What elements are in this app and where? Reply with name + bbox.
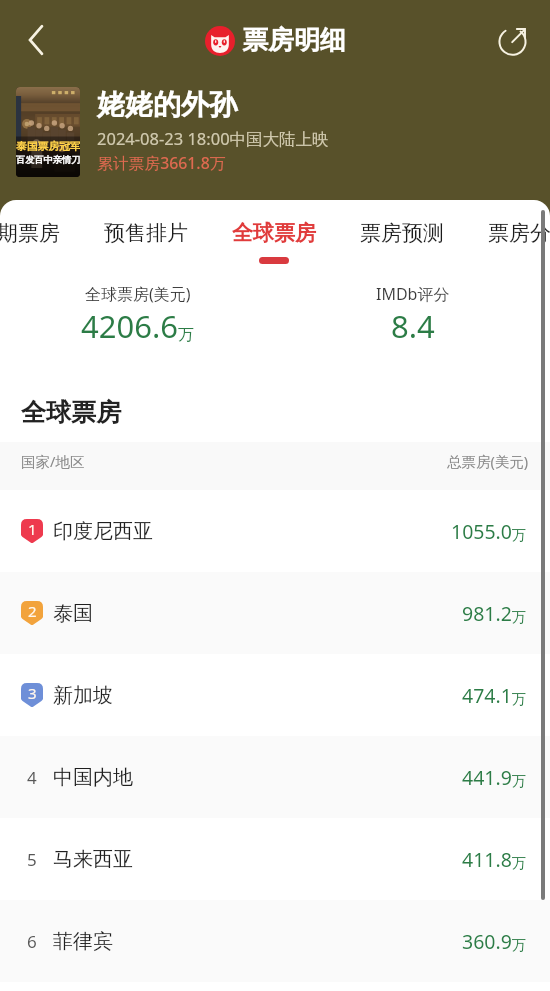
staticText: 1055.0 bbox=[451, 518, 512, 545]
staticText: 474.1 bbox=[462, 682, 512, 709]
staticText: IMDb评分 bbox=[376, 283, 450, 305]
staticText: 万 bbox=[512, 608, 527, 626]
button[interactable]: Back bbox=[8, 12, 64, 68]
staticText: 全球票房 bbox=[232, 220, 316, 246]
button[interactable]: 全球票房 bbox=[210, 200, 338, 268]
staticText: 马来西亚 bbox=[53, 847, 133, 872]
button[interactable]: 3 bbox=[0, 654, 550, 736]
staticText: 全球票房(美元) bbox=[85, 283, 191, 305]
button[interactable]: Share bbox=[489, 15, 539, 65]
staticText: 981.2 bbox=[462, 600, 512, 627]
staticText: 印度尼西亚 bbox=[53, 519, 153, 544]
staticText: 4206.6 bbox=[81, 305, 178, 347]
staticText: 万 bbox=[512, 690, 527, 708]
staticText: 累计票房3661.8万 bbox=[97, 152, 226, 174]
staticText: 6 bbox=[27, 930, 37, 953]
staticText: 国家/地区 bbox=[21, 451, 85, 471]
button[interactable]: 预售排片 bbox=[82, 200, 210, 268]
staticText: 2 bbox=[28, 601, 37, 621]
staticText: 万 bbox=[512, 772, 527, 790]
staticText: 万 bbox=[512, 526, 527, 544]
staticText: 3 bbox=[28, 683, 37, 703]
staticText: 百发百中亲情刀 bbox=[16, 154, 80, 166]
staticText: 万 bbox=[512, 936, 527, 954]
staticText: 4 bbox=[27, 766, 37, 789]
staticText: 总票房(美元) bbox=[447, 451, 529, 471]
staticText: 5 bbox=[27, 848, 37, 871]
button[interactable]: 票房预测 bbox=[338, 200, 466, 268]
staticText: 泰国票房冠军 bbox=[16, 140, 80, 154]
staticText: 票房预测 bbox=[360, 220, 444, 246]
staticText: 360.9 bbox=[462, 928, 512, 955]
button[interactable]: 4 bbox=[0, 736, 550, 818]
staticText: 全球票房 bbox=[21, 397, 121, 428]
staticText: 档期票房 bbox=[0, 220, 60, 246]
staticText: 万 bbox=[178, 325, 194, 345]
staticText: 2024-08-23 18:00中国大陆上映 bbox=[97, 127, 329, 150]
staticText: 中国内地 bbox=[53, 765, 133, 790]
button[interactable]: 票房分析 bbox=[466, 200, 550, 268]
staticText: 411.8 bbox=[462, 846, 512, 873]
button[interactable]: 1 bbox=[0, 490, 550, 572]
staticText: 8.4 bbox=[391, 305, 435, 347]
staticText: 姥姥的外孙 bbox=[97, 87, 237, 122]
staticText: 新加坡 bbox=[53, 683, 113, 708]
staticText: 1 bbox=[28, 519, 37, 539]
staticText: 菲律宾 bbox=[53, 929, 113, 954]
staticText: 票房分析 bbox=[488, 220, 550, 246]
button[interactable]: 档期票房 bbox=[0, 200, 82, 268]
button[interactable]: 2 bbox=[0, 572, 550, 654]
staticText: 票房明细 bbox=[242, 24, 346, 57]
staticText: 泰国 bbox=[53, 601, 93, 626]
staticText: 441.9 bbox=[462, 764, 512, 791]
staticText: 预售排片 bbox=[104, 220, 188, 246]
button[interactable]: 5 bbox=[0, 818, 550, 900]
button[interactable]: 6 bbox=[0, 900, 550, 982]
staticText: 万 bbox=[512, 854, 527, 872]
